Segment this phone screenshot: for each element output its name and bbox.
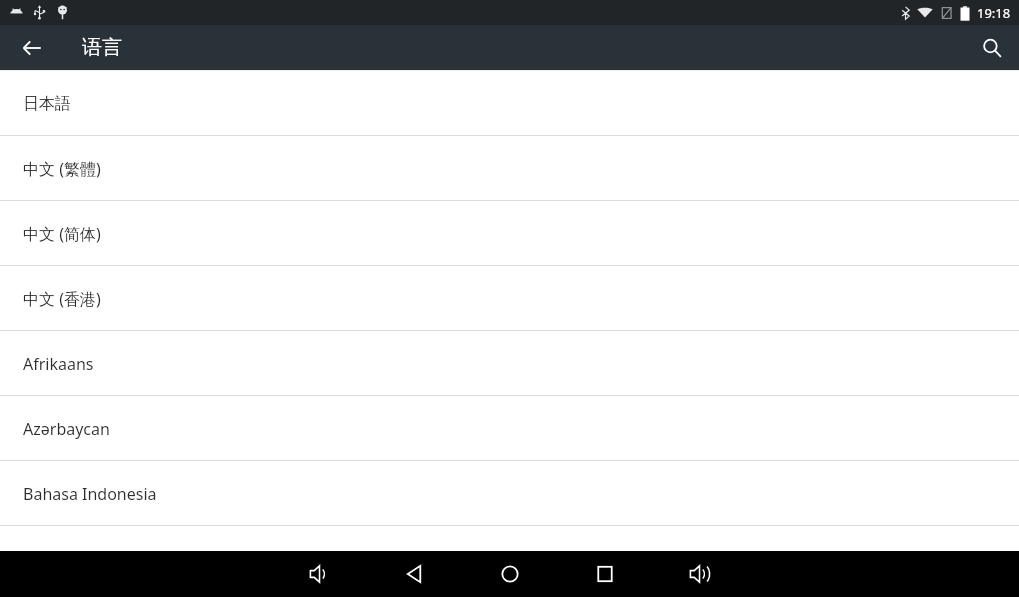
- staticText: Azərbaycan: [23, 418, 110, 440]
- button[interactable]: Azərbaycan: [0, 396, 1019, 461]
- button[interactable]: Volume up: [680, 551, 720, 597]
- staticText: Afrikaans: [23, 353, 94, 375]
- button[interactable]: 日本語: [0, 71, 1019, 136]
- staticText: 语言: [82, 35, 122, 60]
- button[interactable]: Search: [973, 29, 1011, 67]
- staticText: 中文 (香港): [23, 288, 101, 310]
- button[interactable]: Recents: [585, 551, 625, 597]
- staticText: 中文 (简体): [23, 223, 101, 245]
- button[interactable]: Afrikaans: [0, 331, 1019, 396]
- button[interactable]: Home: [490, 551, 530, 597]
- button[interactable]: 中文 (香港): [0, 266, 1019, 331]
- button[interactable]: Bahasa Indonesia: [0, 461, 1019, 526]
- staticText: 中文 (繁體): [23, 158, 101, 180]
- button[interactable]: 中文 (繁體): [0, 136, 1019, 201]
- button[interactable]: Back: [14, 30, 50, 66]
- staticText: 日本語: [23, 94, 71, 114]
- button[interactable]: Volume down: [300, 551, 340, 597]
- button[interactable]: 中文 (简体): [0, 201, 1019, 266]
- staticText: 19:18: [977, 4, 1011, 22]
- button[interactable]: Back: [395, 551, 435, 597]
- staticText: Bahasa Indonesia: [23, 483, 157, 505]
